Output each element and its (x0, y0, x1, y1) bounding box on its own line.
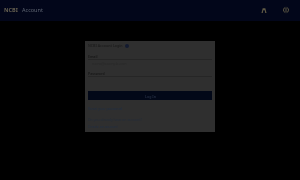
staticText: NCBI Account Login (88, 43, 123, 48)
button[interactable]: Create an account (88, 124, 118, 129)
staticText: Account (22, 6, 43, 13)
staticText: Email (88, 54, 98, 59)
button[interactable]: Menu (280, 4, 292, 16)
staticText: Password (88, 71, 105, 76)
staticText: Log In (145, 94, 156, 99)
button[interactable]: Email field (88, 59, 212, 67)
staticText: NCBI (4, 6, 18, 13)
button[interactable]: Reset your password (88, 106, 123, 111)
button[interactable]: Log in (258, 4, 270, 16)
